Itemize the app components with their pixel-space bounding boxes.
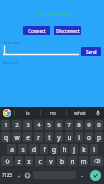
button[interactable]: no <box>41 107 66 119</box>
button[interactable]: 3 <box>23 120 32 130</box>
staticText: ?123 <box>2 172 12 178</box>
staticText: w <box>14 133 20 142</box>
button[interactable]: s <box>18 144 27 154</box>
staticText: Disconnect <box>56 28 80 34</box>
staticText: 2 <box>15 121 19 129</box>
button[interactable]: Emoji <box>23 169 32 181</box>
staticText: u <box>67 133 72 142</box>
button[interactable]: Send <box>81 47 101 56</box>
staticText: d <box>32 145 36 154</box>
button[interactable]: h <box>60 144 68 154</box>
staticText: 5 <box>47 121 51 129</box>
staticText: Send <box>86 49 97 55</box>
button[interactable]: Disconnect <box>54 26 81 35</box>
button[interactable]: 6 <box>55 120 63 130</box>
button[interactable]: g <box>50 144 58 154</box>
staticText: y <box>57 133 61 142</box>
button[interactable]: d <box>29 144 38 154</box>
button[interactable]: f <box>40 144 48 154</box>
button[interactable]: , <box>15 170 22 180</box>
button[interactable] <box>3 46 79 57</box>
staticText: m <box>80 157 87 166</box>
button[interactable]: u <box>65 132 73 142</box>
staticText: Received <box>3 60 18 65</box>
button[interactable]: is <box>15 107 40 119</box>
button[interactable]: 4 <box>34 120 43 130</box>
staticText: a <box>10 145 14 154</box>
button[interactable]: e <box>23 132 32 142</box>
button[interactable]: p <box>95 132 103 142</box>
staticText: t <box>48 133 51 142</box>
staticText: l <box>93 145 95 154</box>
staticText: r <box>37 133 40 142</box>
button[interactable]: y <box>55 132 63 142</box>
button[interactable]: Backspace <box>90 156 103 166</box>
button[interactable]: 5 <box>45 120 53 130</box>
staticText: k <box>82 145 86 154</box>
staticText: i <box>78 133 80 142</box>
button[interactable]: Google <box>0 107 14 119</box>
staticText: 0 <box>97 121 101 129</box>
staticText: c <box>38 157 42 166</box>
button[interactable]: m <box>79 156 88 166</box>
staticText: o <box>87 133 91 142</box>
button[interactable]: w <box>12 132 21 142</box>
staticText: 4 <box>37 121 41 129</box>
button[interactable]: i <box>75 132 83 142</box>
staticText: . <box>81 171 83 179</box>
button[interactable]: 7 <box>65 120 73 130</box>
button[interactable]: Shift <box>1 156 13 166</box>
staticText: Connected <box>37 10 68 18</box>
staticText: is <box>26 110 30 117</box>
button[interactable]: j <box>70 144 78 154</box>
button[interactable]: what <box>67 107 92 119</box>
staticText: z <box>17 157 21 166</box>
button[interactable]: 1 <box>1 120 10 130</box>
button[interactable]: b <box>57 156 66 166</box>
staticText: no <box>50 110 57 117</box>
staticText: h <box>62 145 67 154</box>
staticText: 1 <box>4 121 8 129</box>
button[interactable]: z <box>15 156 23 166</box>
button[interactable]: k <box>80 144 88 154</box>
staticText: 3 <box>26 121 30 129</box>
staticText: b <box>60 157 64 166</box>
button[interactable]: n <box>68 156 77 166</box>
button[interactable]: 8 <box>75 120 83 130</box>
staticText: s <box>21 145 25 154</box>
staticText: n <box>70 157 75 166</box>
button[interactable]: x <box>25 156 33 166</box>
staticText: p <box>97 133 101 142</box>
staticText: f <box>43 145 46 154</box>
staticText: x <box>27 157 31 166</box>
button[interactable]: t <box>45 132 53 142</box>
button[interactable]: o <box>85 132 93 142</box>
staticText: 6 <box>57 121 61 129</box>
button[interactable]: v <box>46 156 55 166</box>
button[interactable]: Connect <box>23 26 50 35</box>
staticText: v <box>49 157 53 166</box>
button[interactable]: l <box>90 144 98 154</box>
staticText: e <box>26 133 30 142</box>
button[interactable]: . <box>78 170 85 180</box>
staticText: q <box>4 133 8 142</box>
staticText: To be sent <box>3 40 20 45</box>
staticText: , <box>18 171 20 179</box>
button[interactable]: 0 <box>95 120 103 130</box>
button[interactable]: a <box>7 144 16 154</box>
button[interactable]: 9 <box>85 120 93 130</box>
button[interactable]: c <box>35 156 44 166</box>
staticText: 8 <box>77 121 81 129</box>
staticText: j <box>73 145 75 154</box>
staticText: 9 <box>87 121 91 129</box>
button[interactable]: r <box>34 132 43 142</box>
button[interactable]: Voice input <box>92 107 104 119</box>
button[interactable]: q <box>1 132 10 142</box>
button[interactable]: 2 <box>12 120 21 130</box>
staticText: g <box>52 145 56 154</box>
button[interactable]: ?123 <box>1 170 13 180</box>
staticText: Connect <box>28 28 46 34</box>
staticText: what <box>74 110 86 117</box>
button[interactable]: Enter <box>90 170 101 181</box>
